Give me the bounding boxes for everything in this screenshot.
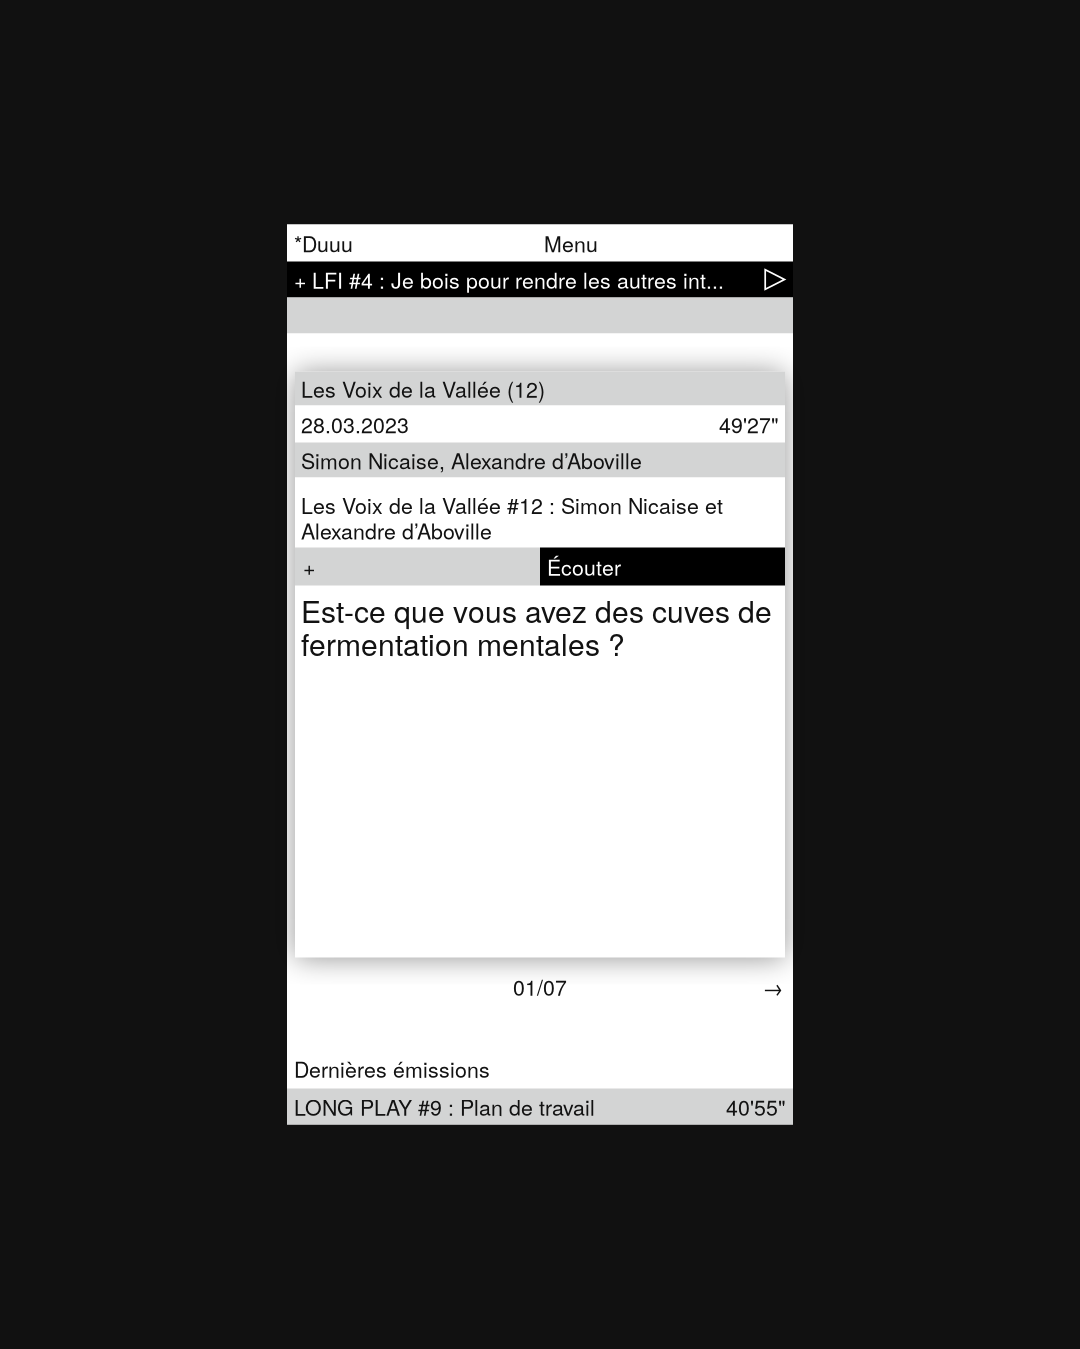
staticText: 01/07 [513, 971, 567, 1002]
button[interactable]: *Duuu [294, 228, 353, 258]
staticText: 28.03.2023 [301, 409, 409, 439]
staticText: Les Voix de la Vallée #12 : Simon Nicais… [301, 489, 723, 546]
staticText: + [303, 551, 315, 582]
staticText: Dernières émissions [294, 1053, 490, 1084]
button[interactable]: Play [757, 261, 793, 297]
staticText: + LFI #4 : Je bois pour rendre les autre… [294, 264, 724, 295]
button[interactable]: + LFI #4 : Je bois pour rendre les autre… [287, 261, 724, 297]
staticText: *Duuu [294, 228, 353, 258]
staticText: 49'27" [719, 409, 779, 439]
button[interactable]: Écouter [540, 547, 785, 585]
staticText: Menu [544, 228, 598, 258]
button[interactable]: LONG PLAY #9 : Plan de travail [287, 1088, 793, 1124]
staticText: 40'55" [726, 1091, 786, 1122]
button[interactable]: Menu [544, 228, 598, 258]
staticText: LONG PLAY #9 : Plan de travail [294, 1091, 595, 1122]
staticText: → [762, 971, 783, 1002]
button[interactable]: + [295, 547, 540, 585]
staticText: Écouter [547, 551, 621, 582]
button[interactable]: Next page [762, 971, 783, 1002]
staticText: Simon Nicaise, Alexandre d’Aboville [301, 445, 642, 475]
staticText: Est-ce que vous avez des cuves de fermen… [301, 588, 772, 664]
staticText: Les Voix de la Vallée (12) [301, 373, 545, 404]
